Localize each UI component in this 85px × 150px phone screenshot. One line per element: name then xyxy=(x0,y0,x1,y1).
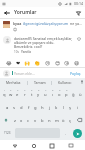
staticText: f xyxy=(28,105,30,111)
button[interactable]: Back xyxy=(3,9,11,17)
staticText: ö xyxy=(62,118,65,124)
button[interactable]: g xyxy=(32,100,39,113)
staticText: 8 xyxy=(52,88,54,91)
button[interactable]: Like xyxy=(76,36,82,42)
staticText: x xyxy=(20,118,23,124)
button[interactable]: 9 xyxy=(56,86,63,100)
button[interactable]: Merhaba xyxy=(5,80,22,85)
button[interactable]: b xyxy=(39,113,46,126)
staticText: Yanıtla xyxy=(21,50,31,54)
button[interactable]: Send xyxy=(73,129,82,138)
staticText: 00:14 xyxy=(74,1,83,6)
button[interactable]: Back xyxy=(10,141,19,150)
staticText: 10s xyxy=(14,50,19,54)
button[interactable]: 😍 xyxy=(54,59,61,66)
staticText: 😂 xyxy=(6,60,12,66)
staticText: o xyxy=(58,92,61,98)
button[interactable]: 2 xyxy=(7,86,14,100)
staticText: ç xyxy=(69,118,72,124)
staticText: v xyxy=(34,118,37,124)
staticText: Merhaba xyxy=(6,80,21,85)
button[interactable]: ?123 xyxy=(1,127,14,139)
button[interactable]: Home xyxy=(29,141,38,150)
button[interactable]: ş xyxy=(67,100,74,113)
staticText: 😘 xyxy=(64,60,70,66)
staticText: r xyxy=(24,92,26,98)
staticText: y xyxy=(37,92,40,98)
button[interactable]: 6 xyxy=(35,86,42,100)
button[interactable]: a xyxy=(4,100,11,113)
staticText: t xyxy=(31,92,33,98)
button[interactable]: ğ xyxy=(70,86,77,100)
button[interactable]: 😘 xyxy=(63,59,70,66)
button[interactable]: 5 xyxy=(28,86,35,100)
button[interactable]: 😂 xyxy=(5,59,12,66)
staticText: 🙌 xyxy=(24,60,31,66)
staticText: Paylaş xyxy=(70,71,81,76)
button[interactable]: d xyxy=(18,100,25,113)
button[interactable]: l xyxy=(60,100,67,113)
staticText: q xyxy=(3,92,6,98)
button[interactable]: v xyxy=(32,113,39,126)
staticText: ş xyxy=(69,105,72,111)
button[interactable]: ❤️ xyxy=(15,59,22,66)
button[interactable]: kyaa xyxy=(0,19,85,34)
button[interactable]: Paylaş xyxy=(69,70,82,77)
button[interactable]: ü xyxy=(77,86,84,100)
button[interactable]: Kullanıcı xyxy=(57,80,73,85)
staticText: 1 xyxy=(4,88,6,91)
button[interactable]: dastanm85 Sanatsal emçek başlıklar, albü… xyxy=(0,34,85,56)
staticText: z xyxy=(14,118,16,124)
button[interactable]: m xyxy=(53,113,60,126)
staticText: u xyxy=(44,92,47,98)
button[interactable]: 0 xyxy=(63,86,70,100)
staticText: . xyxy=(65,131,67,136)
staticText: l xyxy=(63,105,65,111)
staticText: 7 xyxy=(45,88,47,91)
button[interactable]: f xyxy=(25,100,32,113)
staticText: g xyxy=(34,105,37,111)
staticText: 😍 xyxy=(55,60,61,66)
button[interactable]: Filter xyxy=(74,9,82,17)
staticText: m xyxy=(55,118,59,124)
staticText: p xyxy=(65,92,68,98)
button[interactable]: 4 xyxy=(21,86,28,100)
button[interactable]: 3 xyxy=(14,86,21,100)
staticText: c xyxy=(27,118,30,124)
button[interactable]: z xyxy=(11,113,18,126)
button[interactable]: 7 xyxy=(42,86,49,100)
button[interactable]: Tamam xyxy=(33,80,47,85)
button[interactable]: 🙌 xyxy=(24,59,31,66)
button[interactable]: j xyxy=(46,100,53,113)
button[interactable]: Voice input xyxy=(78,78,85,86)
staticText: b xyxy=(41,118,44,124)
staticText: 2 xyxy=(10,88,12,91)
staticText: ğ xyxy=(72,92,75,98)
staticText: Tamam xyxy=(34,80,46,85)
button[interactable]: s xyxy=(11,100,18,113)
staticText: 9 xyxy=(59,88,61,91)
button[interactable]: Backspace xyxy=(74,113,84,126)
button[interactable]: Recents xyxy=(47,141,56,150)
staticText: s xyxy=(13,105,16,111)
button[interactable]: ç xyxy=(67,113,74,126)
button[interactable]: Keyboard xyxy=(66,141,75,150)
button[interactable]: 8 xyxy=(49,86,56,100)
button[interactable]: 1 xyxy=(1,86,7,100)
button[interactable]: Shift xyxy=(1,113,11,126)
button[interactable]: h xyxy=(39,100,46,113)
button[interactable]: n xyxy=(46,113,53,126)
button[interactable]: 😢 xyxy=(44,59,51,66)
button[interactable]: 😆 xyxy=(73,59,80,66)
button[interactable]: i xyxy=(74,100,81,113)
button[interactable]: k xyxy=(53,100,60,113)
button[interactable]: ö xyxy=(60,113,67,126)
staticText: 5 xyxy=(31,88,33,91)
button[interactable]: x xyxy=(18,113,25,126)
button[interactable]: c xyxy=(25,113,32,126)
staticText: n xyxy=(48,118,51,124)
button[interactable]: 👏 xyxy=(34,59,41,66)
staticText: #gececigündüzçalışıyorum xyxy=(23,21,69,26)
